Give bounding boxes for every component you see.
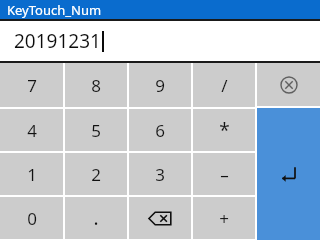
button[interactable]: + [193, 197, 255, 239]
staticText: * [219, 117, 230, 143]
button[interactable]: 5 [65, 109, 127, 151]
staticText: 1 [27, 163, 37, 186]
staticText: 6 [155, 119, 165, 142]
button[interactable]: * [193, 109, 255, 151]
staticText: 2 [91, 163, 101, 186]
button[interactable]: / [193, 63, 255, 107]
button[interactable]: 8 [65, 63, 127, 107]
staticText: 9 [155, 74, 165, 97]
button[interactable]: . [65, 197, 127, 239]
button[interactable]: 20191231 [0, 21, 320, 61]
staticText: 8 [91, 74, 101, 97]
button[interactable]: 2 [65, 153, 127, 195]
button[interactable]: Clear [257, 63, 320, 106]
button[interactable]: 9 [129, 63, 191, 107]
staticText: 3 [155, 163, 165, 186]
button[interactable]: 3 [129, 153, 191, 195]
staticText: 7 [27, 74, 37, 97]
staticText: 0 [27, 207, 37, 230]
button[interactable]: – [193, 153, 255, 195]
staticText: – [220, 163, 229, 186]
button[interactable]: Backspace [129, 197, 191, 239]
button[interactable]: 6 [129, 109, 191, 151]
button[interactable]: 1 [0, 153, 63, 195]
staticText: 5 [91, 119, 101, 142]
staticText: KeyTouch_Num [7, 1, 102, 19]
button[interactable]: Enter [257, 108, 320, 240]
staticText: 20191231 [14, 28, 101, 54]
button[interactable]: 7 [0, 63, 63, 107]
staticText: 4 [27, 119, 37, 142]
staticText: + [219, 207, 229, 230]
staticText: / [221, 74, 228, 97]
button[interactable]: 4 [0, 109, 63, 151]
staticText: . [93, 205, 99, 231]
button[interactable]: 0 [0, 197, 63, 239]
